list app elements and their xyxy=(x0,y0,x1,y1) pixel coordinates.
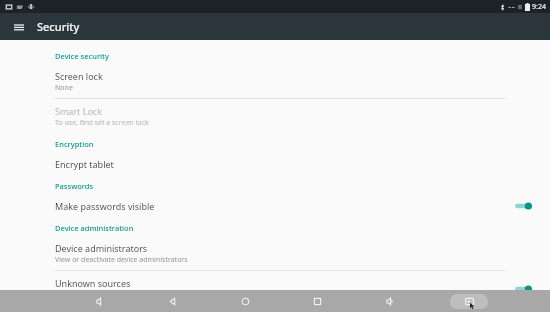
staticText: None xyxy=(55,83,73,93)
button[interactable]: Screen lock xyxy=(0,64,550,98)
staticText: Make passwords visible xyxy=(55,200,155,212)
staticText: To use, first set a screen lock xyxy=(55,118,149,128)
staticText: Allow installation of apps from unknown … xyxy=(55,290,215,300)
staticText: Unknown sources xyxy=(55,277,131,289)
button[interactable]: Make passwords visible xyxy=(0,194,550,217)
button[interactable]: Home xyxy=(234,290,256,312)
staticText: Device administrators xyxy=(55,242,148,254)
staticText: Device security xyxy=(55,51,109,61)
button[interactable]: Unknown sources xyxy=(0,271,550,305)
button[interactable]: Open navigation menu xyxy=(8,16,30,38)
button[interactable]: Smart Lock xyxy=(0,99,550,133)
button[interactable]: Device administrators xyxy=(0,236,550,270)
staticText: Security xyxy=(37,19,80,34)
staticText: Passwords xyxy=(55,181,94,191)
button[interactable]: Back xyxy=(161,290,183,312)
staticText: Screen lock xyxy=(55,70,103,82)
staticText: 9:24 xyxy=(532,2,546,12)
staticText: Smart Lock xyxy=(55,105,102,117)
staticText: Encrypt tablet xyxy=(55,158,114,170)
staticText: View or deactivate device administrators xyxy=(55,255,188,265)
staticText: Device administration xyxy=(55,223,134,233)
staticText: Encryption xyxy=(55,139,94,149)
button[interactable]: Encrypt tablet xyxy=(0,152,550,175)
button[interactable]: Take screenshot xyxy=(450,294,488,309)
button[interactable]: Volume up xyxy=(378,290,400,312)
button[interactable]: Recent apps xyxy=(306,290,328,312)
button[interactable]: Volume down xyxy=(88,290,110,312)
